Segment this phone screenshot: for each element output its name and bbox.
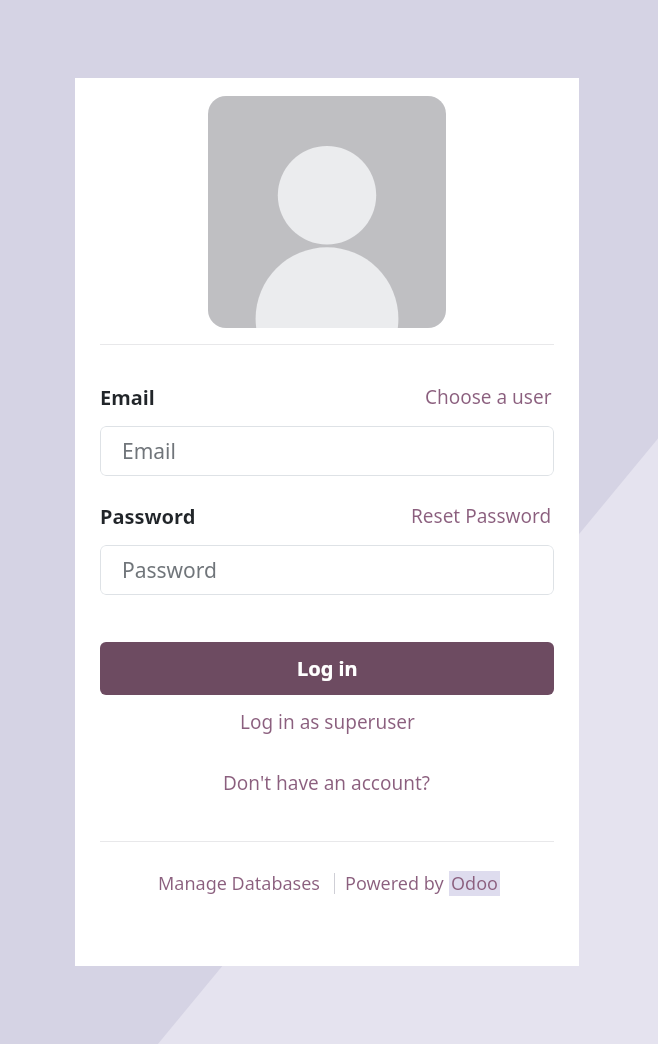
button[interactable]: Don't have an account? — [217, 767, 437, 799]
staticText: Manage Databases — [158, 871, 320, 896]
button[interactable]: Log in — [100, 642, 554, 695]
staticText: Log in — [297, 655, 358, 682]
staticText: Choose a user — [425, 384, 552, 410]
staticText: Password — [100, 503, 196, 530]
staticText: Log in as superuser — [240, 709, 415, 735]
button[interactable]: Email — [100, 426, 554, 476]
button[interactable]: Manage Databases — [154, 868, 324, 899]
staticText: Powered by — [345, 871, 449, 896]
staticText: Don't have an account? — [223, 770, 431, 796]
other: User avatar — [208, 96, 446, 328]
button[interactable]: Choose a user — [423, 381, 554, 413]
button[interactable]: Powered by — [345, 868, 500, 899]
staticText: Odoo — [451, 871, 498, 896]
staticText: Reset Password — [411, 503, 552, 529]
staticText: Email — [122, 437, 176, 466]
staticText: Email — [100, 384, 155, 411]
button[interactable]: Password — [100, 545, 554, 595]
button[interactable]: Reset Password — [409, 500, 554, 532]
staticText: Password — [122, 556, 217, 585]
button[interactable]: Log in as superuser — [234, 706, 421, 738]
